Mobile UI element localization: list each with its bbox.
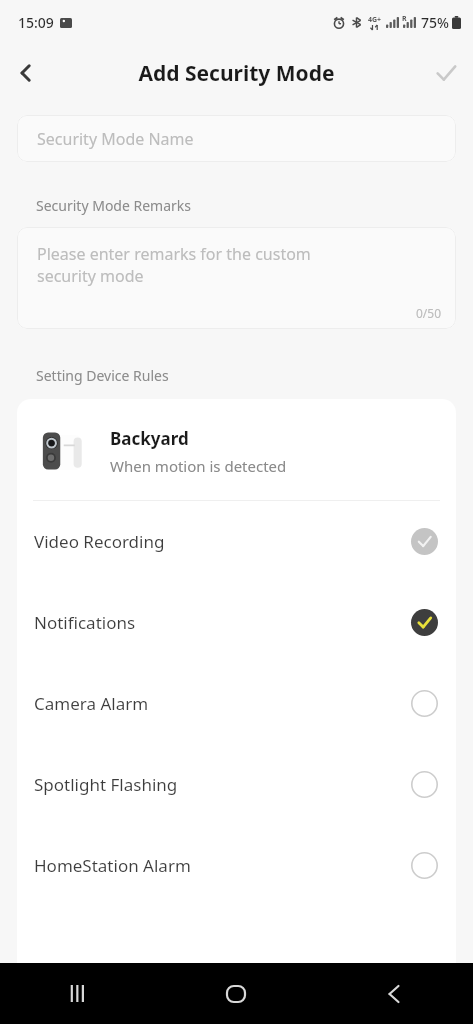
staticText: Backyard bbox=[110, 427, 189, 450]
staticText: Video Recording bbox=[34, 530, 411, 553]
staticText: Add Security Mode bbox=[138, 59, 335, 88]
button[interactable]: Security Mode Name bbox=[17, 115, 456, 162]
button[interactable]: Please enter remarks for the custom secu… bbox=[17, 227, 456, 329]
staticText: Notifications bbox=[34, 611, 411, 634]
button[interactable]: Recent apps bbox=[0, 963, 157, 1024]
staticText: When motion is detected bbox=[110, 456, 287, 476]
button[interactable]: Home bbox=[157, 963, 315, 1024]
button[interactable]: Back bbox=[315, 963, 473, 1024]
staticText: Please enter remarks for the custom secu… bbox=[37, 243, 311, 287]
button[interactable]: Confirm bbox=[419, 46, 473, 100]
staticText: R bbox=[402, 14, 407, 24]
staticText: 15:09 bbox=[18, 13, 54, 32]
staticText: 4G+ bbox=[368, 15, 382, 25]
staticText: Camera Alarm bbox=[34, 692, 411, 715]
staticText: HomeStation Alarm bbox=[34, 854, 411, 877]
button[interactable]: Video Recording bbox=[17, 501, 456, 582]
staticText: Security Mode Remarks bbox=[36, 196, 192, 215]
staticText: Spotlight Flashing bbox=[34, 773, 411, 796]
button[interactable]: HomeStation Alarm bbox=[17, 825, 456, 906]
staticText: 0/50 bbox=[416, 305, 442, 321]
button[interactable]: Spotlight Flashing bbox=[17, 744, 456, 825]
button[interactable]: Backyard bbox=[17, 423, 456, 479]
staticText: Security Mode Name bbox=[37, 128, 194, 150]
button[interactable]: Notifications bbox=[17, 582, 456, 663]
staticText: Setting Device Rules bbox=[36, 366, 169, 385]
button[interactable]: Camera Alarm bbox=[17, 663, 456, 744]
button[interactable]: Back bbox=[0, 47, 52, 99]
staticText: 75% bbox=[421, 13, 449, 32]
